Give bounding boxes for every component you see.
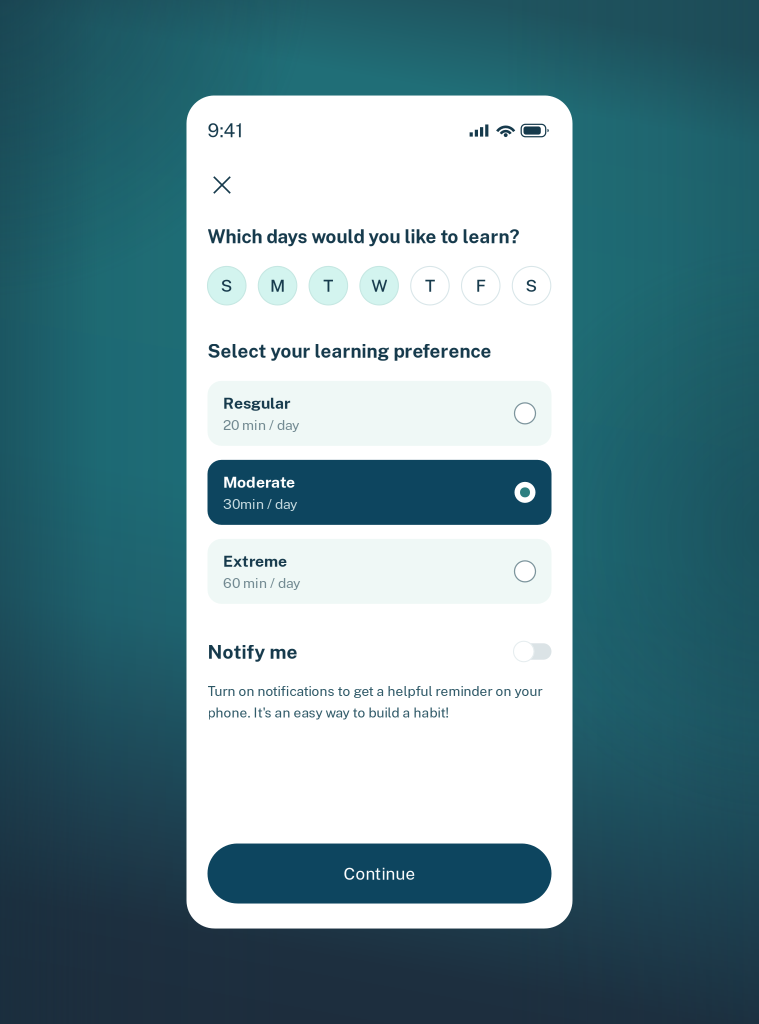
staticText: 20 min / day	[223, 417, 299, 433]
staticText: Turn on notifications to get a helpful r…	[207, 683, 542, 721]
staticText: Extreme	[223, 552, 287, 570]
staticText: Continue	[343, 864, 415, 883]
staticText: Which days would you like to learn?	[207, 225, 519, 247]
button[interactable]: Close	[186, 141, 244, 203]
staticText: F	[476, 276, 486, 296]
button[interactable]: Notify me	[513, 641, 551, 663]
button[interactable]: M	[258, 266, 297, 305]
button[interactable]: Continue	[207, 843, 551, 903]
button[interactable]: S	[512, 266, 551, 305]
staticText: Resgular	[223, 394, 290, 412]
staticText: S	[221, 276, 233, 296]
button[interactable]: S	[207, 266, 246, 305]
staticText: S	[525, 276, 537, 296]
staticText: 60 min / day	[223, 575, 300, 591]
button[interactable]: T	[309, 266, 348, 305]
button[interactable]: W	[360, 266, 398, 305]
button[interactable]: Extreme	[207, 539, 551, 604]
staticText: T	[425, 276, 435, 296]
staticText: 9:41	[207, 120, 243, 141]
staticText: Moderate	[223, 473, 295, 491]
staticText: T	[323, 276, 333, 296]
button[interactable]: Moderate	[207, 460, 551, 525]
staticText: Select your learning preference	[207, 340, 491, 362]
staticText: M	[270, 276, 285, 296]
staticText: W	[371, 276, 387, 296]
button[interactable]: F	[461, 266, 500, 305]
button[interactable]: T	[411, 266, 449, 305]
staticText: 30min / day	[223, 496, 297, 512]
button[interactable]: Resgular	[207, 381, 551, 446]
staticText: Notify me	[207, 641, 297, 663]
